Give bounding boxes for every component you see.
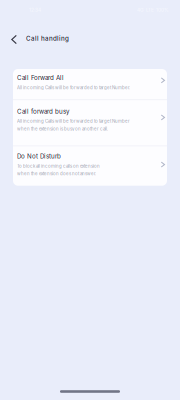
button[interactable]: Call Forward All bbox=[13, 69, 167, 99]
staticText: Call forward busy bbox=[17, 108, 69, 115]
staticText: All incoming Calls will be forwarded to … bbox=[17, 85, 130, 90]
staticText: All incoming Calls will be forwarded to … bbox=[17, 119, 130, 124]
staticText: when the extension is busy on another ca… bbox=[17, 126, 108, 131]
staticText: To block all incoming calls on extension bbox=[17, 163, 100, 169]
staticText: Do Not Disturb bbox=[17, 153, 61, 160]
button[interactable]: Call forward busy bbox=[13, 100, 167, 146]
staticText: Call handling bbox=[26, 35, 69, 42]
button[interactable]: Back bbox=[0, 29, 26, 48]
staticText: when the extension does not answer. bbox=[17, 171, 96, 176]
button[interactable]: Do Not Disturb bbox=[13, 146, 167, 186]
staticText: Call Forward All bbox=[17, 74, 64, 81]
